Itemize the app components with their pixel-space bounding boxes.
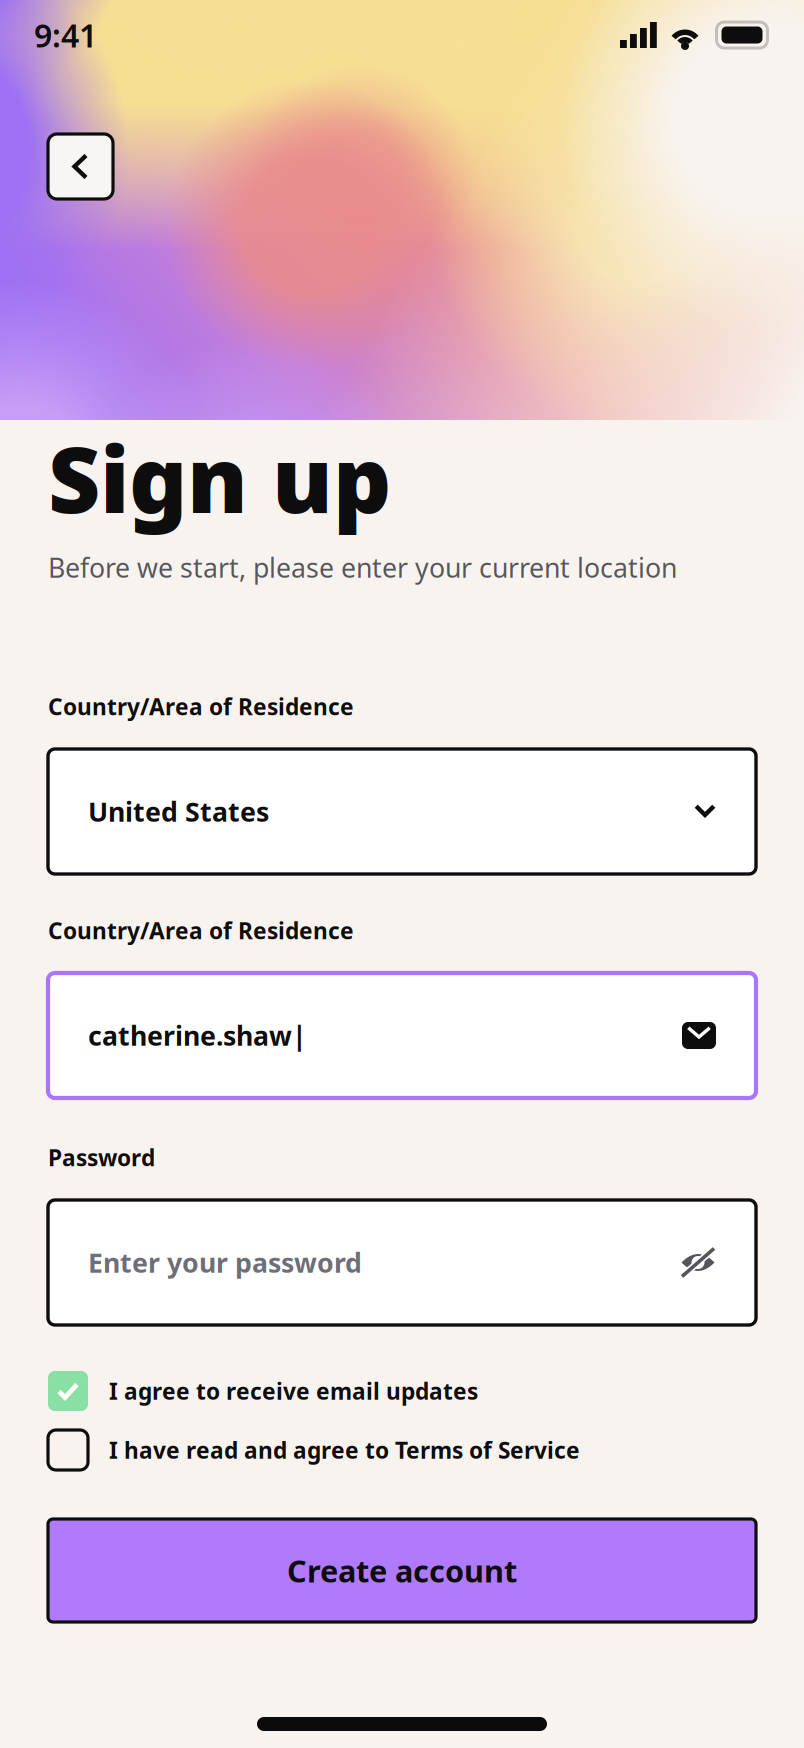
staticText: Country/Area of Residence	[48, 915, 354, 945]
staticText: catherine.shaw|	[88, 1018, 307, 1053]
staticText: Before we start, please enter your curre…	[48, 550, 677, 585]
staticText: Sign up	[48, 418, 391, 538]
button[interactable]: Create account	[48, 1519, 756, 1622]
button[interactable]: Back	[48, 134, 113, 199]
staticText: Create account	[287, 1550, 517, 1591]
staticText: Password	[48, 1142, 155, 1172]
staticText: Country/Area of Residence	[48, 691, 354, 721]
staticText: 9:41	[34, 14, 97, 56]
button[interactable]: I agree to receive email updates	[48, 1370, 756, 1412]
button[interactable]: Enter your password	[48, 1200, 756, 1325]
staticText: United States	[88, 794, 269, 829]
staticText: Enter your password	[88, 1245, 362, 1280]
staticText: I agree to receive email updates	[109, 1376, 478, 1406]
staticText: I have read and agree to Terms of Servic…	[109, 1435, 580, 1465]
button[interactable]: catherine.shaw|	[48, 973, 756, 1098]
button[interactable]: I have read and agree to Terms of Servic…	[48, 1429, 756, 1471]
button[interactable]: United States	[48, 749, 756, 874]
